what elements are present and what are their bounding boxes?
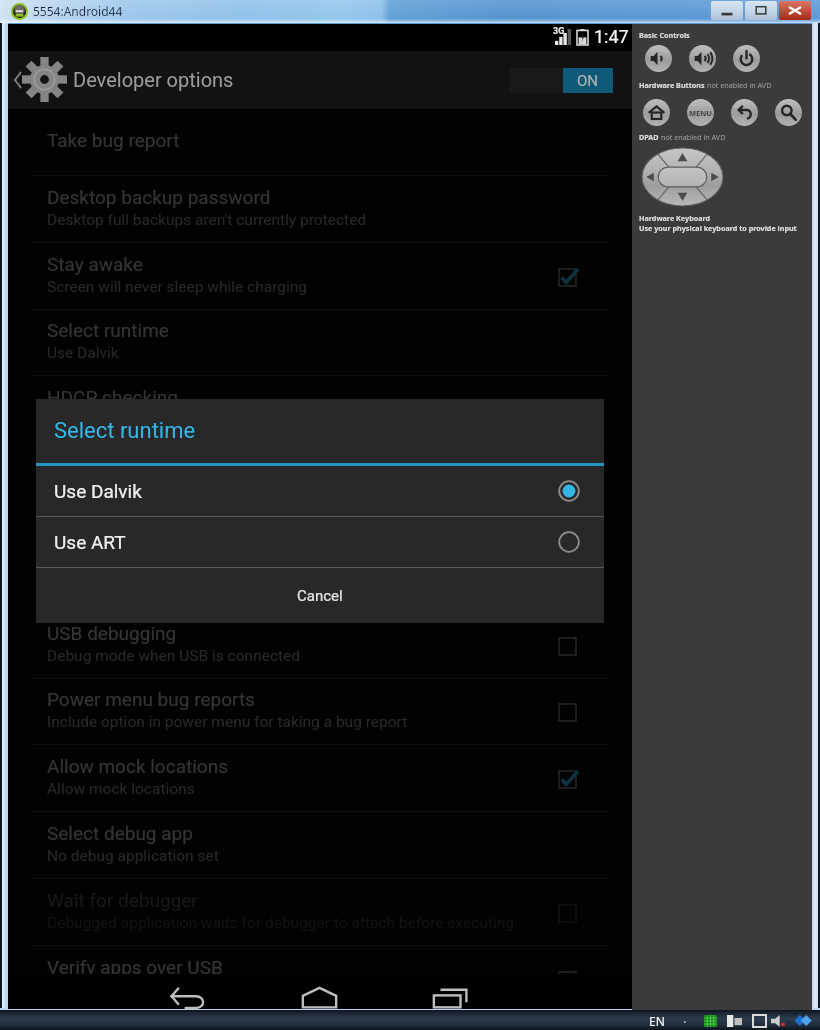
staticText: 5554:Android44 [33,3,123,19]
staticText: 1:47 [594,26,629,47]
button[interactable]: Power menu bug reports [8,678,632,745]
staticText: Desktop full backups aren't currently pr… [47,211,367,229]
staticText: No debug application set [47,847,219,865]
button[interactable]: Use Dalvik [36,466,604,516]
staticText: Cancel [297,587,343,605]
button[interactable]: Search [775,99,802,126]
button[interactable]: Navigate up - Developer options [8,51,240,109]
staticText: EN [649,1013,665,1029]
button[interactable]: Desktop backup password [8,176,632,243]
staticText: Never use HDCP checking [47,411,227,429]
button[interactable]: Cancel [36,568,604,623]
button[interactable]: Power [733,45,760,72]
button[interactable]: Stay awake [8,243,632,310]
button[interactable]: Wait for debugger [8,879,632,946]
staticText: Power menu bug reports [47,688,255,710]
staticText: Select runtime [47,319,169,341]
staticText: Geeky stats about running processes [47,545,302,563]
staticText: Select debug app [47,822,193,844]
button[interactable]: Select runtime [8,309,632,376]
staticText: Screen will never sleep while charging [47,278,307,296]
staticText: · [683,1013,687,1030]
staticText: Hardware Buttons [639,80,707,90]
button[interactable]: Verify apps over USB [8,946,632,974]
staticText: Verify apps over USB [47,956,223,974]
staticText: Developer options [73,68,234,91]
button[interactable]: Volume down [645,45,672,72]
button[interactable]: Close [779,1,811,20]
staticText: Basic Controls [639,30,690,40]
button[interactable]: Menu [687,99,714,126]
button[interactable]: Bluetooth HCI snoop log [8,443,632,510]
staticText: Include option in power menu for taking … [47,713,408,731]
button[interactable]: Maximize [745,1,777,20]
staticText: Stay awake [47,253,143,275]
staticText: Debug mode when USB is connected [47,647,301,665]
staticText: Capture all bluetooth HCI packets in a f… [47,478,331,496]
staticText: not enabled in AVD [661,132,726,142]
button[interactable]: Back [148,974,226,1009]
staticText: Use Dalvik [47,344,119,362]
staticText: Desktop backup password [47,186,271,208]
button[interactable]: USB debugging [8,612,632,679]
staticText: Process Stats [47,520,165,542]
staticText: Take bug report [47,129,180,151]
button[interactable]: Allow mock locations [8,745,632,812]
staticText: Wait for debugger [47,889,198,911]
staticText: Use Dalvik [54,480,142,502]
button[interactable]: Take bug report [8,109,632,176]
button[interactable]: Developer options on/off switch [510,68,613,93]
button[interactable]: Home [280,974,358,1009]
button[interactable]: Volume up [689,45,716,72]
button[interactable]: Use ART [36,517,604,567]
staticText: Debugged application waits for debugger … [47,914,515,932]
staticText: Select runtime [54,418,196,444]
staticText: Use your physical keyboard to provide in… [639,223,797,233]
staticText: Hardware Keyboard [639,213,711,223]
staticText: not enabled in AVD [707,80,772,90]
button[interactable]: HDCP checking [8,376,632,443]
button[interactable]: D-pad [642,148,723,206]
staticText: Bluetooth HCI snoop log [47,453,253,475]
staticText: HDCP checking [47,386,178,408]
button[interactable]: Select debug app [8,812,632,879]
staticText: Use ART [54,531,126,553]
staticText: MENU [689,108,713,118]
button[interactable]: Back [731,99,758,126]
staticText: Allow mock locations [47,780,195,798]
button[interactable]: Recent apps [411,974,489,1009]
button[interactable]: Home [643,99,670,126]
button[interactable]: Minimize [711,1,743,20]
staticText: USB debugging [47,622,177,644]
staticText: 3G [553,26,565,37]
button[interactable]: Process Stats [8,510,632,577]
staticText: Allow mock locations [47,755,228,777]
staticText: ON [577,72,599,90]
staticText: DPAD [639,132,661,142]
